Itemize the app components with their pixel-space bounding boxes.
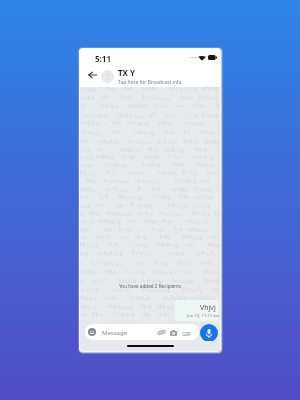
button[interactable]: Back <box>86 68 99 81</box>
button[interactable]: Record voice message <box>200 324 218 342</box>
button[interactable]: Camera <box>169 329 177 336</box>
staticText: TX Y <box>118 67 136 78</box>
button[interactable]: Emoji <box>88 328 96 336</box>
staticText: Jun 10, 11:11 am <box>187 313 219 319</box>
staticText: GIF <box>182 330 191 337</box>
button[interactable]: Attach <box>157 328 166 337</box>
staticText: Tap here for Broadcast info <box>118 79 182 86</box>
staticText: You have added 2 Recipients <box>80 283 220 289</box>
staticText: Vhjvj <box>200 303 216 313</box>
button[interactable]: TX Y <box>118 67 182 86</box>
button[interactable]: Profile photo <box>101 70 114 83</box>
button[interactable]: Vhjvj <box>175 300 219 321</box>
button[interactable]: GIF <box>182 330 191 337</box>
staticText: Message <box>102 329 128 337</box>
button[interactable]: Emoji <box>85 324 199 340</box>
staticText: 5:11 <box>95 53 111 64</box>
